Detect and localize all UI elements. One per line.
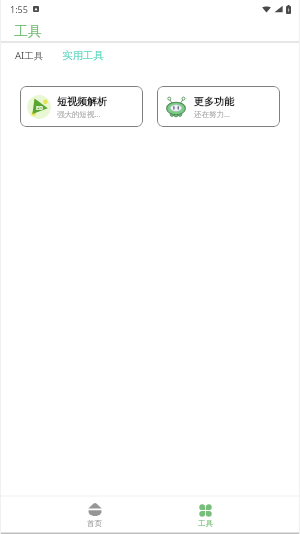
button[interactable]: ED xyxy=(20,86,143,127)
button[interactable]: 工具 xyxy=(150,497,261,532)
staticText: 首页 xyxy=(87,519,102,528)
button[interactable]: 首页 xyxy=(39,497,150,532)
button[interactable]: 实用工具 xyxy=(54,45,114,64)
button[interactable]: 更多功能 xyxy=(157,86,280,127)
staticText: 强大的短视… xyxy=(57,109,101,119)
staticText: 还在努力… xyxy=(194,109,230,119)
staticText: 工具 xyxy=(198,519,213,528)
staticText: 1:55 xyxy=(10,3,28,15)
staticText: 工具 xyxy=(14,23,42,41)
staticText: 实用工具 xyxy=(62,49,104,62)
staticText: AI工具 xyxy=(15,49,44,62)
staticText: 短视频解析 xyxy=(57,95,107,108)
staticText: ED xyxy=(36,104,44,111)
button[interactable]: AI工具 xyxy=(0,45,54,64)
staticText: 更多功能 xyxy=(194,95,234,108)
